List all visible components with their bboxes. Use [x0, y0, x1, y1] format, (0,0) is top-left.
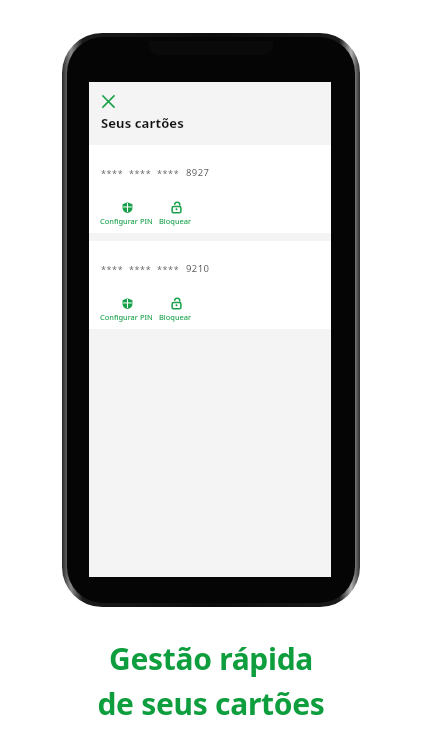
staticText: Configurar PIN [100, 312, 153, 322]
staticText: **** [101, 263, 124, 275]
staticText: Bloquear [159, 216, 192, 226]
button[interactable]: **** [89, 145, 331, 233]
staticText: Seus cartões [101, 114, 184, 132]
staticText: **** [129, 263, 152, 275]
staticText: Gestão rápida [109, 638, 313, 679]
staticText: 8927 [186, 166, 210, 179]
staticText: Configurar PIN [100, 216, 153, 226]
button[interactable]: Bloquear [156, 296, 195, 322]
button[interactable]: **** [89, 241, 331, 329]
staticText: 9210 [186, 262, 210, 275]
button[interactable]: Configurar PIN [97, 296, 156, 322]
button[interactable]: Fechar [97, 90, 119, 112]
staticText: **** [157, 167, 180, 179]
staticText: **** [101, 167, 124, 179]
staticText: **** [129, 167, 152, 179]
staticText: Bloquear [159, 312, 192, 322]
staticText: de seus cartões [97, 683, 325, 724]
button[interactable]: Bloquear [156, 200, 195, 226]
staticText: **** [157, 263, 180, 275]
button[interactable]: Configurar PIN [97, 200, 156, 226]
